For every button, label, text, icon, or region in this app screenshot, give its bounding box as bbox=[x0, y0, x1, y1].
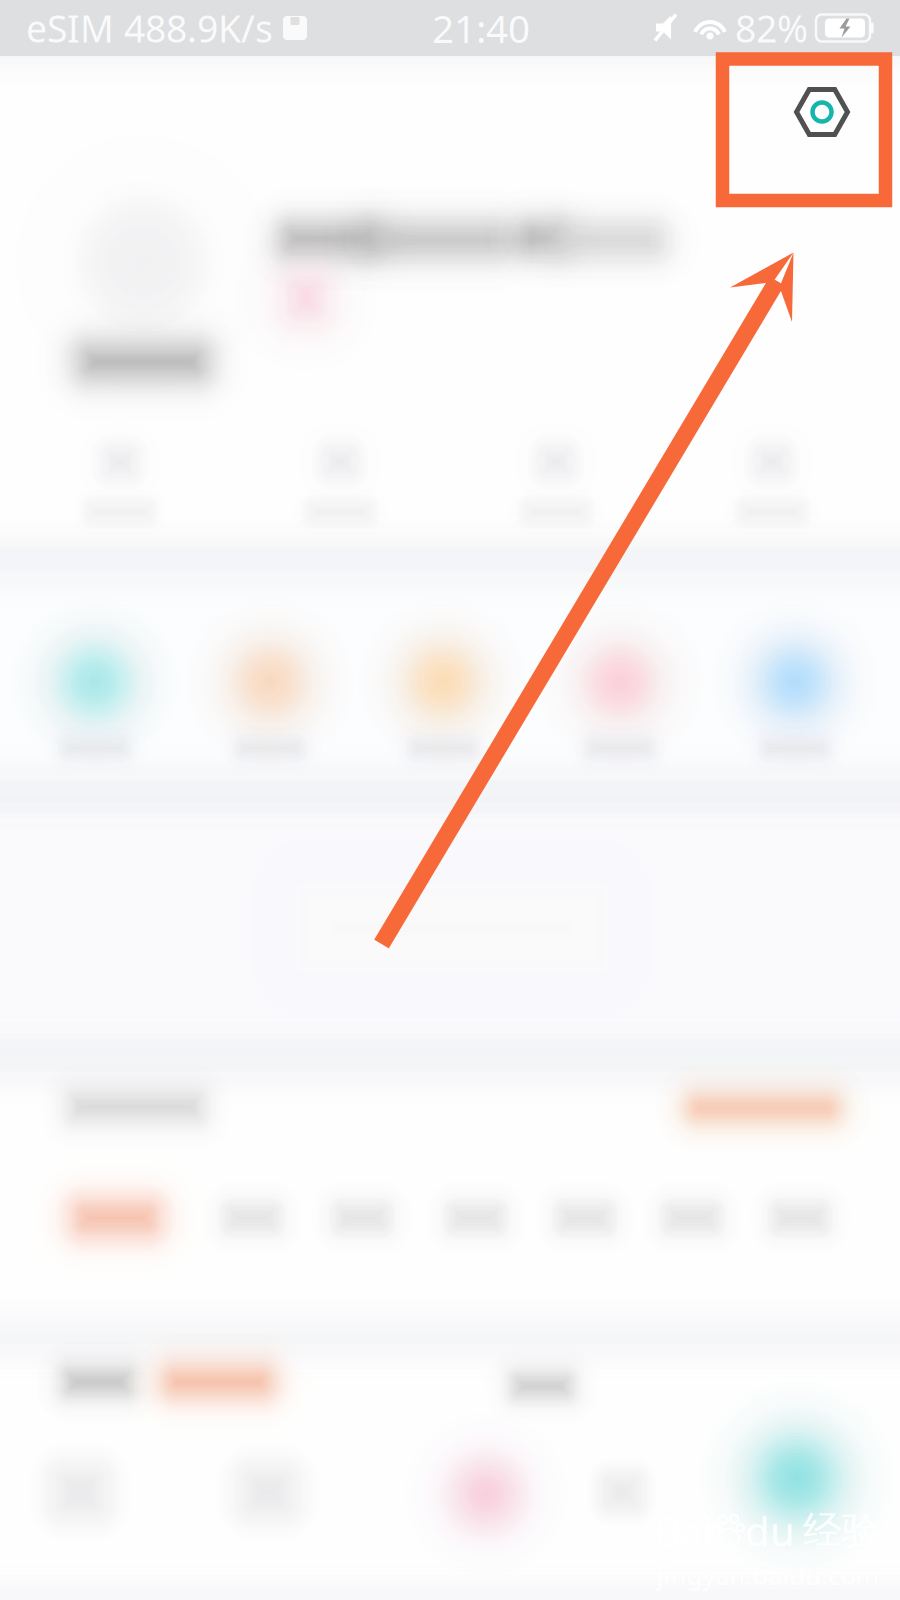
staticText: du bbox=[745, 1504, 795, 1557]
staticText: eSIM 488.9K/s bbox=[26, 3, 273, 53]
staticText: 21:40 bbox=[432, 2, 530, 54]
staticText: 经验 bbox=[803, 1507, 881, 1554]
staticText: 82% bbox=[735, 3, 808, 53]
button[interactable]: Settings bbox=[767, 62, 877, 162]
